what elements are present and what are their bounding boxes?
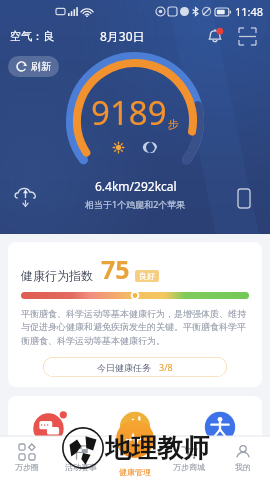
- staticText: 11:48: [235, 4, 264, 19]
- button[interactable]: 设备: [230, 184, 258, 212]
- staticText: 万步圈: [15, 462, 39, 472]
- staticText: 步: [168, 117, 179, 131]
- button[interactable]: 万步圈: [0, 436, 54, 480]
- button[interactable]: 上传数据: [10, 182, 42, 214]
- button[interactable]: 健康评估: [92, 408, 177, 465]
- staticText: 6.4km/292kcal: [95, 178, 177, 194]
- staticText: 良好: [139, 271, 155, 281]
- button[interactable]: 健康管理: [116, 420, 154, 458]
- button[interactable]: 我的: [216, 436, 270, 480]
- button[interactable]: 健康咨询: [8, 408, 92, 465]
- staticText: 健康管理: [119, 467, 151, 477]
- staticText: 空气：良: [10, 29, 54, 43]
- staticText: 健康咨询: [30, 452, 70, 465]
- button[interactable]: 今日健康任务: [43, 357, 227, 377]
- staticText: 9189: [91, 90, 167, 135]
- button[interactable]: 改善训练: [177, 408, 262, 465]
- staticText: 75: [101, 252, 130, 286]
- staticText: 活动赛事: [65, 462, 97, 472]
- button[interactable]: 活动赛事: [54, 436, 108, 480]
- button[interactable]: 扫一扫: [234, 23, 260, 49]
- staticText: 我的: [235, 462, 251, 472]
- button[interactable]: 通知: [202, 23, 228, 49]
- staticText: 健康行为指数: [21, 268, 93, 283]
- staticText: 万步商城: [173, 462, 205, 472]
- staticText: 地理教师: [105, 432, 209, 465]
- staticText: 健康评估: [115, 452, 155, 465]
- staticText: 今日健康任务: [97, 362, 151, 373]
- staticText: 平衡膳食、科学运动等基本健康行为，是增强体质、维持与促进身心健康和避免疾病发生的…: [21, 308, 249, 347]
- staticText: 相当于1个鸡腿和2个苹果: [85, 198, 186, 210]
- button[interactable]: 健康行为指数: [8, 242, 262, 387]
- staticText: 改善训练: [200, 452, 240, 465]
- button[interactable]: 刷新: [8, 56, 59, 77]
- staticText: 8月30日: [100, 28, 145, 44]
- staticText: 3/8: [159, 361, 173, 373]
- button[interactable]: 万步商城: [162, 436, 216, 480]
- staticText: 刷新: [31, 60, 51, 73]
